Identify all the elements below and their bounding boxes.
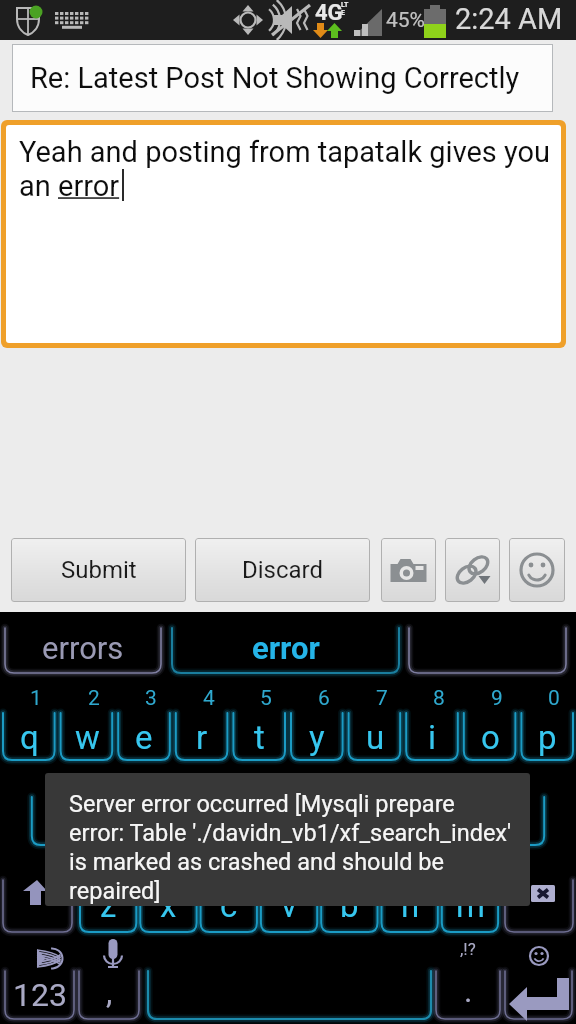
button[interactable]: o [461,712,519,762]
staticText: o [481,718,500,757]
staticText: e [135,718,153,757]
staticText: Discard [242,556,324,584]
button[interactable]: n [380,880,440,930]
staticText: Re: Latest Post Not Showing Correctly [30,61,520,95]
staticText: Yeah and posting from tapatalk gives you [19,135,551,169]
staticText: error [58,169,120,203]
staticText: h [337,802,356,841]
staticText: x [160,886,177,925]
button[interactable]: k [432,796,490,846]
button[interactable]: h [317,796,375,846]
staticText: b [340,886,359,925]
button[interactable]: Backspace [505,880,573,932]
button[interactable]: Space [148,971,431,1019]
button[interactable]: i [403,712,461,762]
button[interactable]: q [0,712,58,762]
staticText: f [225,802,237,841]
staticText: 2:24 AM [455,2,563,36]
button[interactable]: t [230,712,288,762]
staticText: p [538,718,557,757]
staticText: j [399,802,407,841]
button[interactable]: 123 [5,971,74,1019]
button[interactable]: Attach photo [381,538,436,602]
button[interactable]: w [58,712,116,762]
staticText: q [20,718,39,757]
staticText: error [252,630,320,666]
staticText: v [281,886,297,925]
staticText: 8 [433,686,445,711]
staticText: k [453,802,470,841]
staticText: LT E [341,1,349,17]
button[interactable]: s [86,796,144,846]
staticText: 9 [491,686,503,711]
staticText: r [196,718,208,757]
staticText: errors [42,630,124,666]
button[interactable]: Insert emoticon [509,538,565,602]
staticText: 45% [386,8,425,33]
button[interactable]: Re: Latest Post Not Showing Correctly [12,44,553,112]
button[interactable]: m [440,880,500,930]
staticText: 123 [13,976,67,1014]
staticText: s [106,802,124,841]
staticText: n [401,886,420,925]
staticText: Submit [61,556,137,584]
staticText: 4G [315,0,343,26]
button[interactable]: b [319,880,379,930]
staticText: ,!? [460,939,476,959]
button[interactable]: , [79,964,139,1019]
button[interactable]: Voice input [90,938,136,971]
staticText: 2 [88,686,100,711]
button[interactable]: error [172,622,399,673]
staticText: u [366,718,385,757]
button[interactable]: j [374,796,432,846]
button[interactable]: u [346,712,404,762]
button[interactable]: z [78,880,138,930]
button[interactable]: Emoji [520,942,558,971]
button[interactable]: Insert link [445,538,500,602]
button[interactable]: a [29,796,87,846]
staticText: 4 [203,686,215,711]
staticText: , [106,973,113,1011]
button[interactable]: g [259,796,317,846]
button[interactable]: . [436,962,500,1019]
button[interactable]: l [490,796,548,846]
button[interactable]: Enter [505,971,572,1019]
staticText: w [75,718,100,757]
staticText: 7 [376,686,388,711]
button[interactable]: Keyboard settings [26,938,73,971]
button[interactable]: Shift [3,880,72,932]
staticText: . [464,972,473,1010]
button[interactable]: More suggestions [409,622,566,673]
staticText: d [164,802,183,841]
staticText: z [100,886,117,925]
button[interactable]: y [288,712,346,762]
button[interactable]: e [115,712,173,762]
button[interactable]: c [199,880,259,930]
staticText: 0 [548,686,560,711]
staticText: i [428,718,437,757]
staticText: 6 [318,686,330,711]
button[interactable]: r [173,712,231,762]
button[interactable]: x [138,880,198,930]
staticText: 5 [260,686,272,711]
staticText: g [279,802,298,841]
button[interactable]: Yeah and posting from tapatalk gives you [6,125,561,343]
button[interactable]: d [144,796,202,846]
staticText: Server error occurred [Mysqli prepare er… [69,790,512,905]
staticText: t [254,718,265,757]
button[interactable]: f [202,796,260,846]
staticText: 3 [145,686,157,711]
staticText: y [309,718,325,757]
staticText: m [456,886,485,925]
button[interactable]: errors [5,622,161,673]
button[interactable]: Discard [195,538,370,602]
staticText: 1 [30,686,42,711]
button[interactable]: Submit [11,538,186,602]
staticText: an [19,169,58,203]
button[interactable]: v [259,880,319,930]
staticText: c [220,886,238,925]
button[interactable]: p [518,712,576,762]
